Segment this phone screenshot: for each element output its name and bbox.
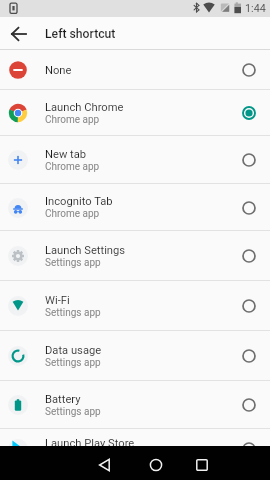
button[interactable]: Battery: [0, 381, 270, 429]
button[interactable]: None: [0, 50, 270, 90]
button[interactable]: Launch Settings: [0, 231, 270, 281]
staticText: 1:44: [245, 2, 266, 15]
staticText: Settings app: [45, 257, 101, 269]
button[interactable]: Launch Play Store: [0, 429, 270, 469]
staticText: None: [45, 64, 72, 77]
button[interactable]: [182, 446, 222, 480]
staticText: Launch Chrome: [45, 101, 124, 114]
staticText: Wi-Fi: [45, 294, 70, 307]
staticText: Launch Play Store: [45, 437, 135, 450]
staticText: Battery: [45, 393, 81, 406]
button[interactable]: Incognito Tab: [0, 184, 270, 231]
staticText: Left shortcut: [45, 27, 116, 41]
button[interactable]: Data usage: [0, 331, 270, 381]
staticText: Chrome app: [45, 114, 100, 126]
staticText: Chrome app: [45, 161, 100, 173]
staticText: Settings app: [45, 307, 101, 319]
button[interactable]: New tab: [0, 136, 270, 184]
button[interactable]: Wi-Fi: [0, 281, 270, 331]
staticText: Settings app: [45, 357, 101, 369]
staticText: Play Store app: [45, 450, 109, 462]
staticText: Launch Settings: [45, 244, 126, 257]
button[interactable]: [85, 446, 125, 480]
button[interactable]: [0, 18, 38, 50]
staticText: Data usage: [45, 344, 102, 357]
staticText: Settings app: [45, 406, 101, 418]
staticText: Incognito Tab: [45, 195, 113, 208]
staticText: Chrome app: [45, 208, 100, 220]
button[interactable]: [136, 446, 176, 480]
button[interactable]: Launch Chrome: [0, 90, 270, 136]
staticText: New tab: [45, 148, 87, 161]
